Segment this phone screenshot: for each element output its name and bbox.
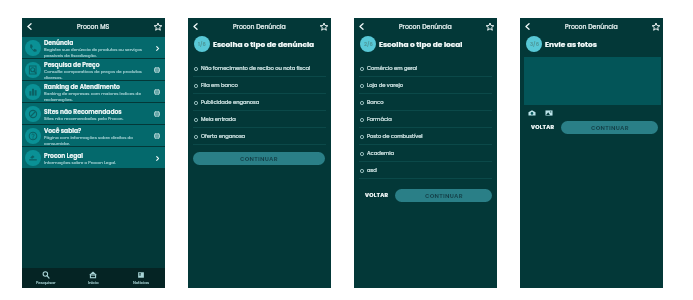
staticText: Pesquisa de Preço	[44, 61, 100, 69]
staticText: Fila em banco	[201, 82, 238, 89]
button[interactable]: Back	[357, 22, 366, 31]
button[interactable]: Farmácia	[354, 111, 497, 128]
staticText: Envie as fotos	[545, 39, 597, 49]
button[interactable]: Back	[25, 22, 34, 31]
button[interactable]: Procon Legal	[22, 147, 165, 168]
button[interactable]: CONTINUAR	[395, 189, 492, 202]
staticText: 1/6	[198, 41, 206, 48]
staticText: Notícias	[133, 280, 150, 286]
button[interactable]: Favorite	[651, 22, 660, 31]
button[interactable]: Sites não Recomendados	[22, 103, 165, 124]
staticText: Comércio em geral	[367, 65, 418, 72]
button[interactable]: Pesquisar	[22, 268, 69, 288]
staticText: Academia	[367, 150, 395, 157]
button[interactable]: Take photo	[527, 108, 536, 117]
staticText: Loja de varejo	[367, 82, 404, 89]
button[interactable]: Back	[523, 22, 532, 31]
button[interactable]: Posto de combustível	[354, 128, 497, 145]
staticText: Procon Legal	[44, 152, 83, 160]
button[interactable]: Fila em banco	[188, 77, 331, 94]
staticText: Consulte comparativos de preços de produ…	[44, 69, 151, 80]
button[interactable]: CONTINUAR	[561, 121, 658, 134]
staticText: Página com informações sobre direitos do…	[44, 135, 151, 146]
staticText: CONTINUAR	[425, 192, 463, 200]
button[interactable]: Denúncia	[22, 37, 165, 58]
button[interactable]: VOLTAR	[363, 188, 391, 202]
button[interactable]: Banco	[354, 94, 497, 111]
button[interactable]: Meia entrada	[188, 111, 331, 128]
staticText: Procon Denúncia	[233, 22, 286, 31]
staticText: 2/6	[364, 41, 373, 48]
staticText: Ranking de empresas com maiores índices …	[44, 91, 151, 102]
staticText: Início	[88, 280, 99, 286]
button[interactable]: Ranking de Atendimento	[22, 81, 165, 102]
button[interactable]: Publicidade enganosa	[188, 94, 331, 111]
staticText: Você sabia?	[44, 127, 82, 135]
staticText: Escolha o tipo de local	[379, 39, 463, 49]
staticText: Posto de combustível	[367, 133, 423, 140]
button[interactable]: Notícias	[117, 268, 165, 288]
staticText: Sites não Recomendados	[44, 108, 122, 116]
staticText: Procon Denúncia	[565, 22, 618, 31]
staticText: Procon Denúncia	[399, 22, 452, 31]
button[interactable]: Favorite	[319, 22, 328, 31]
button[interactable]: Comércio em geral	[354, 60, 497, 77]
staticText: Escolha o tipo de denúncia	[213, 39, 315, 49]
staticText: Pesquisar	[36, 280, 56, 286]
button[interactable]: Oferta enganosa	[188, 128, 331, 145]
staticText: Farmácia	[367, 116, 392, 123]
button[interactable]: Academia	[354, 145, 497, 162]
staticText: Informações sobre o Procon Legal.	[44, 160, 117, 166]
staticText: asd	[367, 167, 377, 174]
staticText: VOLTAR	[531, 123, 555, 131]
button[interactable]: Não fornecimento de recibo ou nota fisca…	[188, 60, 331, 77]
staticText: Ranking de Atendimento	[44, 83, 120, 91]
staticText: Meia entrada	[201, 116, 236, 123]
button[interactable]: VOLTAR	[529, 120, 557, 134]
staticText: Sites não recomendados pelo Procon.	[44, 116, 124, 122]
button[interactable]: Pick image	[544, 108, 553, 117]
staticText: VOLTAR	[365, 191, 389, 199]
button[interactable]: asd	[354, 162, 497, 179]
staticText: CONTINUAR	[240, 155, 278, 163]
staticText: Procon MS	[77, 22, 110, 31]
button[interactable]: CONTINUAR	[193, 152, 325, 165]
button[interactable]: Pesquisa de Preço	[22, 59, 165, 80]
staticText: Denúncia	[44, 39, 74, 47]
button[interactable]: Favorite	[485, 22, 494, 31]
button[interactable]: Favorite	[153, 22, 162, 31]
button[interactable]: Loja de varejo	[354, 77, 497, 94]
staticText: Registre sua denúncia de produtos ou ser…	[44, 47, 151, 58]
button[interactable]: Back	[191, 22, 200, 31]
button[interactable]: Início	[69, 268, 117, 288]
staticText: Banco	[367, 99, 384, 106]
staticText: 3/6	[530, 41, 539, 48]
button[interactable]: Você sabia?	[22, 125, 165, 146]
staticText: Oferta enganosa	[201, 133, 246, 140]
staticText: CONTINUAR	[591, 124, 629, 132]
staticText: Não fornecimento de recibo ou nota fisca…	[201, 65, 311, 72]
staticText: Publicidade enganosa	[201, 99, 260, 106]
